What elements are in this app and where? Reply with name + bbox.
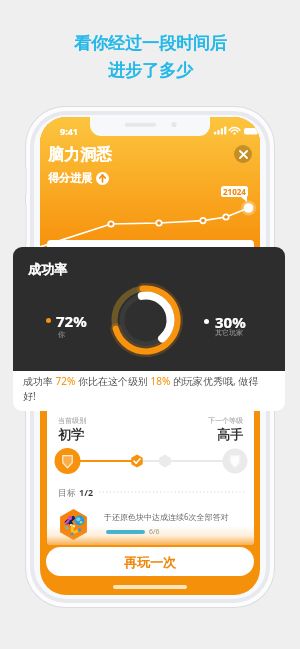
staticText: 30%: [215, 312, 246, 332]
button[interactable]: 再玩一次: [46, 547, 254, 576]
staticText: 高手: [217, 426, 243, 442]
staticText: 成功率: [28, 261, 67, 277]
staticText: 你: [58, 330, 65, 339]
staticText: 目标: [58, 486, 79, 498]
staticText: 下一个等级: [208, 416, 243, 425]
staticText: 72%: [56, 311, 87, 331]
staticText: 6/6: [149, 527, 160, 537]
staticText: 脑力洞悉: [48, 145, 112, 165]
staticText: 得分进展: [48, 171, 92, 185]
staticText: 当前级别: [58, 416, 86, 425]
staticText: 进步了多少: [108, 60, 193, 81]
staticText: 成功率 72% 你比在这个级别 18% 的玩家优秀哦, 做得好!: [23, 374, 270, 403]
staticText: 21024: [223, 186, 246, 197]
staticText: 1/2: [79, 486, 94, 498]
button[interactable]: Close: [234, 145, 252, 163]
staticText: 其它玩家: [215, 328, 243, 337]
staticText: 于还原色块中达成连续6次全部答对: [104, 511, 229, 522]
button[interactable]: Level progress: [47, 448, 254, 476]
staticText: 再玩一次: [124, 554, 176, 570]
staticText: 9:41: [60, 125, 78, 137]
staticText: 初学: [58, 426, 84, 442]
staticText: 看你经过一段时间后: [74, 33, 227, 54]
